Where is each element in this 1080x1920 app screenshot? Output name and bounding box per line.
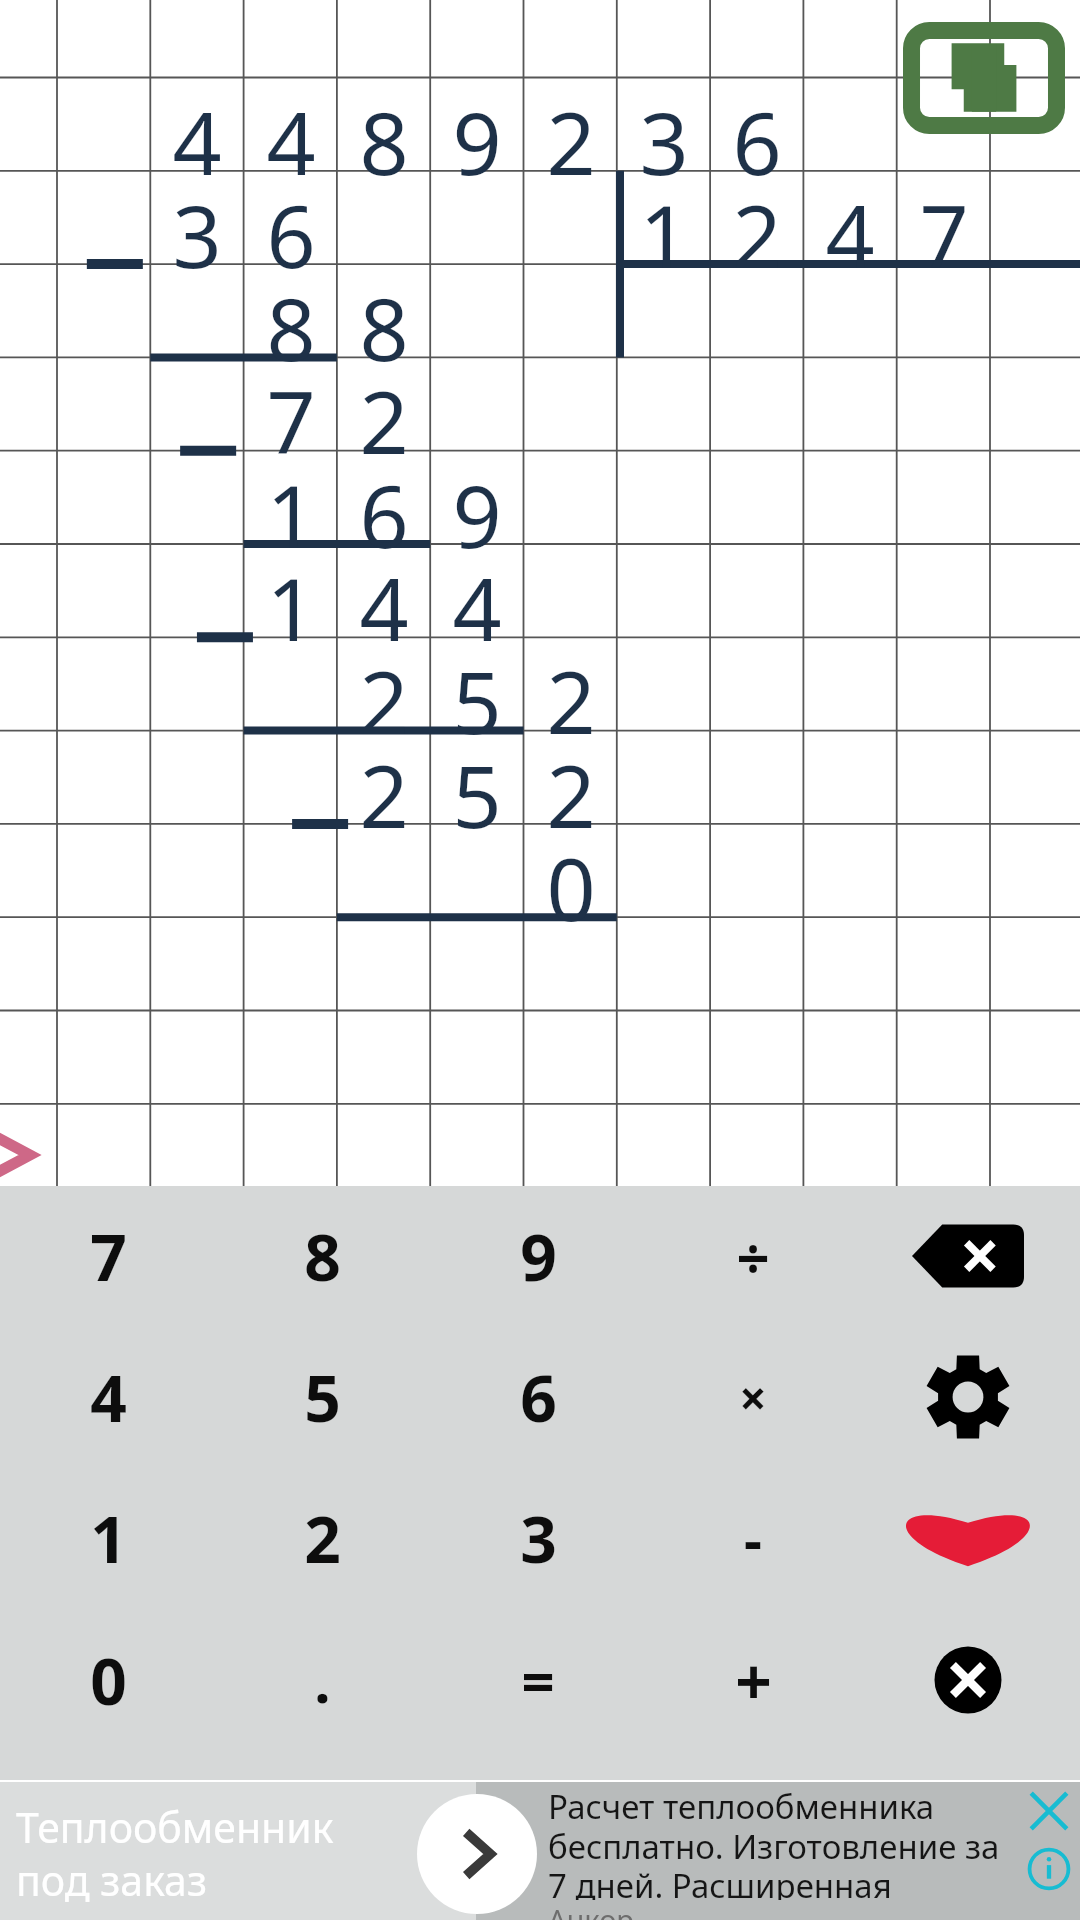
staticText: 9 — [520, 1213, 557, 1300]
button[interactable]: 7 — [8, 1189, 208, 1323]
staticText: 6 — [520, 1354, 557, 1441]
button[interactable]: Ad information — [1022, 1842, 1076, 1896]
staticText: Расчет теплообменника бесплатно. Изготов… — [548, 1784, 1020, 1900]
button[interactable]: 4 — [8, 1330, 208, 1464]
staticText: 2 — [546, 642, 596, 735]
staticText: 3 — [639, 83, 689, 176]
button[interactable]: 9 — [438, 1189, 638, 1323]
button[interactable]: Backspace — [868, 1189, 1068, 1323]
button[interactable]: . — [222, 1613, 422, 1747]
button[interactable]: 3 — [438, 1471, 638, 1605]
staticText: 2 — [546, 736, 596, 829]
staticText: Теплообменник под заказ — [16, 1799, 334, 1908]
staticText: 2 — [359, 736, 409, 829]
button[interactable]: = — [438, 1613, 638, 1747]
button[interactable]: ÷ — [653, 1189, 853, 1323]
button[interactable]: 8 — [222, 1189, 422, 1323]
staticText: 7 — [919, 176, 969, 269]
staticText: 2 — [359, 362, 409, 455]
staticText: 8 — [266, 269, 316, 362]
button[interactable]: Settings — [868, 1330, 1068, 1464]
staticText: 1 — [266, 456, 316, 549]
button[interactable]: × — [653, 1330, 853, 1464]
button[interactable]: 0 — [8, 1613, 208, 1747]
staticText: 0 — [90, 1637, 127, 1724]
staticText: 3 — [172, 176, 222, 269]
staticText: . — [314, 1641, 331, 1720]
button[interactable]: Теплообменник под заказ — [0, 1782, 1080, 1920]
button[interactable]: Close ad — [1022, 1784, 1076, 1838]
button[interactable]: Favorites — [868, 1471, 1068, 1605]
staticText: 4 — [825, 176, 875, 269]
staticText: 8 — [304, 1213, 341, 1300]
staticText: ÷ — [736, 1217, 770, 1296]
button[interactable]: Buy premium — [903, 22, 1065, 134]
staticText: - — [744, 1500, 762, 1576]
staticText: Анкор — [548, 1900, 634, 1920]
staticText: 6 — [359, 456, 409, 549]
staticText: 0 — [546, 829, 596, 922]
staticText: 4 — [90, 1354, 127, 1441]
staticText: 8 — [359, 269, 409, 362]
staticText: 3 — [520, 1495, 557, 1582]
button[interactable]: Clear — [868, 1613, 1068, 1747]
staticText: 9 — [452, 83, 502, 176]
button[interactable]: + — [653, 1613, 853, 1747]
button[interactable]: - — [653, 1471, 853, 1605]
staticText: 5 — [452, 642, 502, 735]
button[interactable]: 6 — [438, 1330, 638, 1464]
staticText: 6 — [732, 83, 782, 176]
staticText: 5 — [304, 1354, 341, 1441]
staticText: 7 — [266, 362, 316, 455]
staticText: 6 — [266, 176, 316, 269]
staticText: 4 — [266, 83, 316, 176]
staticText: = — [521, 1641, 555, 1720]
staticText: 1 — [639, 176, 689, 269]
staticText: + — [735, 1637, 772, 1724]
staticText: 2 — [304, 1495, 341, 1582]
staticText: 7 — [90, 1213, 127, 1300]
staticText: 4 — [452, 549, 502, 642]
staticText: 5 — [452, 736, 502, 829]
button[interactable]: 2 — [222, 1471, 422, 1605]
staticText: 2 — [546, 83, 596, 176]
staticText: 8 — [359, 83, 409, 176]
staticText: 1 — [266, 549, 316, 642]
staticText: × — [739, 1365, 767, 1430]
staticText: 4 — [172, 83, 222, 176]
button[interactable]: 5 — [222, 1330, 422, 1464]
staticText: 9 — [452, 456, 502, 549]
staticText: 1 — [90, 1495, 127, 1582]
staticText: 4 — [359, 549, 409, 642]
staticText: 2 — [359, 642, 409, 735]
staticText: 2 — [732, 176, 782, 269]
button[interactable]: 1 — [8, 1471, 208, 1605]
